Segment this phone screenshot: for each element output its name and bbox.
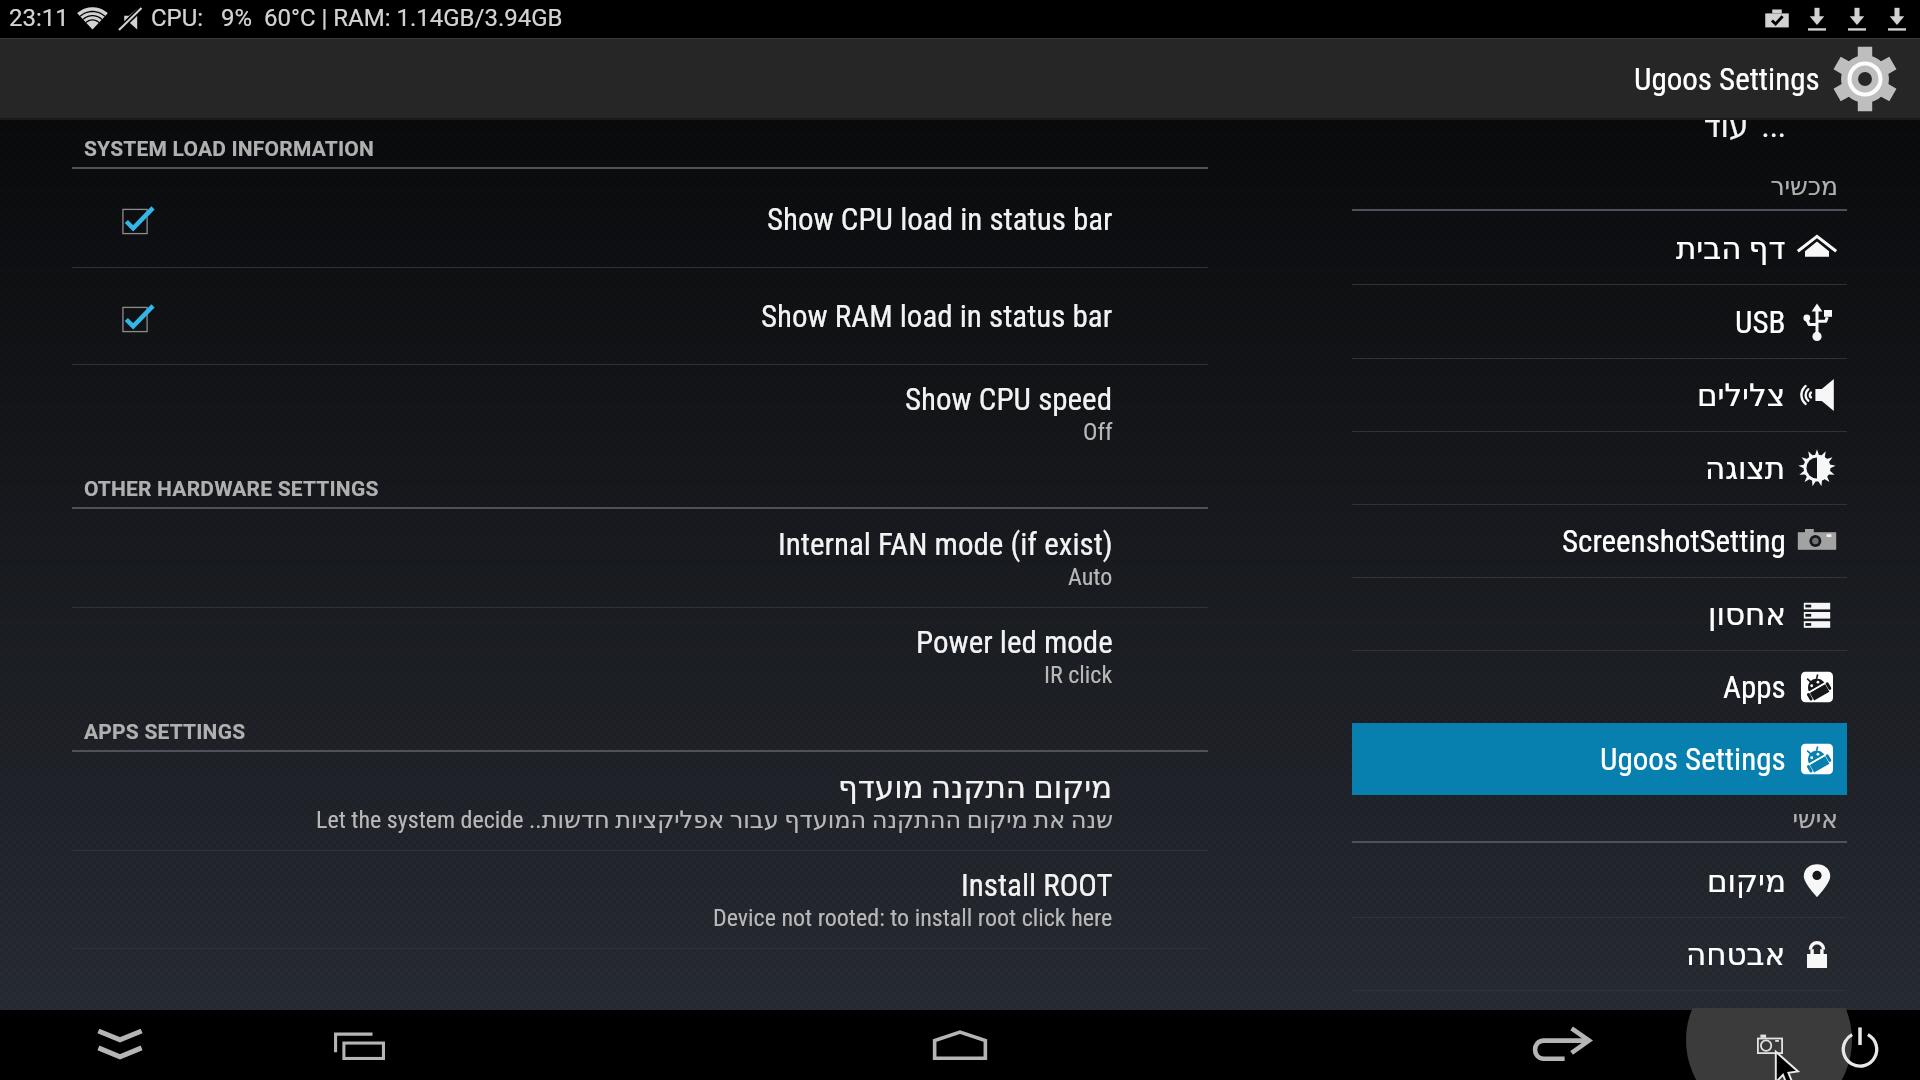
staticText: מכשיר	[1438, 172, 1838, 201]
staticText: אבטחה	[1686, 936, 1786, 972]
staticText: OTHER HARDWARE SETTINGS	[84, 477, 379, 502]
button[interactable]: Home	[920, 1010, 1000, 1080]
staticText: תצוגה	[1705, 450, 1786, 486]
button[interactable]: אבטחה	[1352, 918, 1847, 990]
button[interactable]: USB	[1352, 285, 1847, 358]
staticText: מיקום התקנה מועדף	[838, 769, 1113, 805]
staticText: SYSTEM LOAD INFORMATION	[84, 137, 375, 162]
button[interactable]: Ugoos Settings	[1352, 723, 1847, 795]
staticText: Off	[1083, 418, 1113, 446]
button[interactable]: Collapse	[80, 1010, 160, 1080]
staticText: APPS SETTINGS	[84, 720, 246, 745]
button[interactable]: Ugoos Settings	[1634, 46, 1898, 112]
staticText: דף הבית	[1676, 230, 1786, 266]
staticText: Show CPU load in status bar	[767, 201, 1113, 237]
staticText: מיקום	[1707, 863, 1786, 899]
staticText: Internal FAN mode (if exist)	[778, 526, 1113, 562]
button[interactable]: Show CPU load in status bar	[0, 170, 1208, 267]
button[interactable]: אחסון	[1352, 578, 1847, 650]
staticText: אחסון	[1708, 596, 1786, 632]
staticText: USB	[1735, 304, 1786, 340]
staticText: Show RAM load in status bar	[761, 298, 1113, 334]
staticText: Ugoos Settings	[1600, 741, 1786, 777]
staticText: CPU: 9% 60°C | RAM: 1.14GB/3.94GB	[151, 4, 563, 32]
staticText: Install ROOT	[961, 867, 1113, 903]
button[interactable]: Show CPU speed	[0, 365, 1208, 462]
button[interactable]: Screenshot	[1730, 1010, 1810, 1080]
button[interactable]: צלילים	[1352, 359, 1847, 431]
button[interactable]: ScreenshotSetting	[1352, 505, 1847, 577]
button[interactable]: Show RAM load in status bar	[0, 268, 1208, 364]
staticText: שנה את מיקום ההתקנה המועדף עבור אפליקציו…	[316, 806, 1113, 834]
staticText: עוד ...	[1386, 108, 1786, 144]
other: Settings	[1832, 46, 1898, 112]
staticText: Show CPU speed	[905, 381, 1113, 417]
staticText: 23:11	[9, 4, 69, 32]
button[interactable]: Apps	[1352, 651, 1847, 723]
button[interactable]: Power led mode	[0, 608, 1208, 705]
staticText: Ugoos Settings	[1634, 61, 1820, 97]
staticText: Device not rooted: to install root click…	[713, 904, 1113, 932]
button[interactable]: דף הבית	[1352, 211, 1847, 284]
button[interactable]: Power	[1820, 1010, 1900, 1080]
button[interactable]: Internal FAN mode (if exist)	[0, 510, 1208, 607]
button[interactable]: מיקום התקנה מועדף	[0, 753, 1208, 850]
button[interactable]: Recent apps	[319, 1010, 399, 1080]
staticText: Auto	[1068, 563, 1113, 591]
staticText: אישי	[1438, 805, 1838, 834]
button[interactable]: תצוגה	[1352, 432, 1847, 504]
staticText: Power led mode	[916, 624, 1113, 660]
staticText: צלילים	[1697, 377, 1786, 413]
staticText: ScreenshotSetting	[1562, 523, 1786, 559]
staticText: IR click	[1044, 661, 1113, 689]
button[interactable]: Install ROOT	[0, 851, 1208, 948]
button[interactable]: Back	[1520, 1010, 1600, 1080]
staticText: Apps	[1723, 669, 1786, 705]
button[interactable]: מיקום	[1352, 844, 1847, 917]
